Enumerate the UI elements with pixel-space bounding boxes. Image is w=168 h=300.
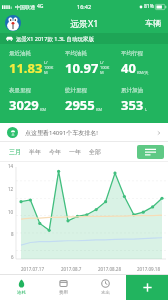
staticText: 10.97 — [65, 59, 99, 77]
staticText: 2017.09.18 — [137, 266, 161, 272]
button[interactable]: 全部 — [85, 144, 105, 160]
staticText: 最近油耗 — [9, 50, 31, 57]
button[interactable]: 远景X1 2017款 1.3L 自动玩家版 — [0, 33, 168, 44]
staticText: 11.83 — [9, 59, 43, 77]
button[interactable]: List view — [137, 145, 164, 159]
staticText: 平均油耗 — [65, 50, 87, 57]
button[interactable]: 支出 — [84, 275, 126, 300]
staticText: 远景X1 2017款 1.3L 自动玩家版 — [16, 35, 94, 43]
staticText: 累计加油 — [121, 87, 143, 94]
button[interactable]: 今年 — [45, 144, 65, 160]
staticText: 中国联通 — [15, 4, 35, 10]
staticText: 16:42 — [77, 3, 92, 10]
button[interactable]: 油耗 — [0, 275, 42, 300]
button[interactable]: Add — [126, 275, 168, 300]
staticText: 全部 — [89, 148, 101, 156]
staticText: 平均行程 — [121, 50, 143, 57]
staticText: L/100KM — [44, 60, 56, 75]
button[interactable]: 最近油耗 — [0, 50, 56, 77]
staticText: KM — [40, 107, 47, 112]
staticText: 2955 — [65, 96, 95, 114]
staticText: KM/天 — [137, 70, 149, 75]
staticText: 4G — [37, 3, 44, 10]
button[interactable]: 费用 — [42, 275, 84, 300]
staticText: 支出 — [101, 290, 110, 296]
button[interactable]: 平均油耗 — [56, 50, 112, 77]
staticText: 点这里看14091个车友排名! — [25, 129, 98, 137]
staticText: 2017.08.28 — [98, 266, 122, 272]
button[interactable]: 三月 — [5, 144, 25, 160]
button[interactable]: 表显里程 — [0, 87, 56, 114]
staticText: 表显里程 — [9, 87, 31, 94]
button[interactable]: 点这里看14091个车友排名! — [0, 123, 168, 142]
staticText: 远景X1 — [70, 17, 99, 29]
staticText: L/100KM — [100, 60, 112, 75]
staticText: 40 — [121, 59, 136, 77]
staticText: 6 — [11, 254, 14, 260]
staticText: 12 — [8, 186, 14, 192]
staticText: 8 — [11, 231, 14, 237]
button[interactable]: 一年 — [65, 144, 85, 160]
staticText: 10 — [8, 209, 14, 215]
staticText: 油耗 — [17, 290, 26, 296]
staticText: 半年 — [29, 148, 41, 156]
staticText: 353 — [121, 96, 144, 114]
staticText: L — [145, 107, 148, 112]
button[interactable]: Profile — [5, 15, 21, 31]
button[interactable]: 统计里程 — [56, 87, 112, 114]
staticText: 今年 — [49, 148, 61, 156]
staticText: 2017.08.7 — [61, 266, 82, 272]
button[interactable]: 累计加油 — [112, 87, 168, 114]
staticText: 2017.07.17 — [21, 266, 45, 272]
staticText: 81% — [144, 3, 154, 10]
staticText: 三月 — [9, 148, 21, 156]
button[interactable]: 平均行程 — [112, 50, 168, 77]
button[interactable]: 半年 — [25, 144, 45, 160]
staticText: 3029 — [9, 96, 39, 114]
button[interactable]: 车辆 — [138, 13, 168, 33]
staticText: 14 — [8, 163, 14, 169]
staticText: 统计里程 — [65, 87, 87, 94]
staticText: 一年 — [69, 148, 81, 156]
staticText: 车辆 — [145, 18, 161, 28]
staticText: KM — [96, 107, 103, 112]
staticText: 费用 — [59, 290, 68, 296]
